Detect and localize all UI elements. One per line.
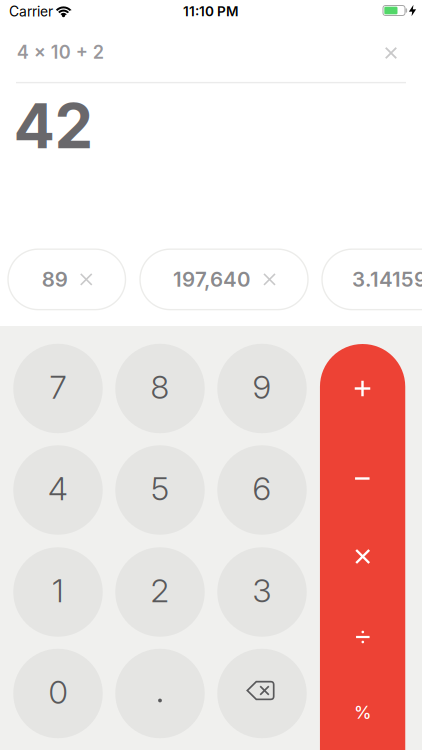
staticText: 1	[52, 571, 64, 610]
button[interactable]: 4	[13, 445, 103, 535]
button[interactable]: Subtract	[341, 463, 384, 494]
staticText: 197,640	[173, 267, 251, 292]
button[interactable]: 6	[217, 445, 307, 535]
staticText: %	[354, 702, 371, 723]
button[interactable]: 3.14159265	[322, 249, 422, 310]
button[interactable]: Delete	[217, 649, 307, 738]
button[interactable]: Clear expression	[378, 40, 404, 66]
staticText: 9	[252, 368, 271, 406]
staticText: 4 × 10 + 2	[17, 41, 104, 63]
button[interactable]: 2	[115, 547, 205, 637]
button[interactable]: 197,640	[140, 249, 308, 310]
button[interactable]: 9	[217, 344, 307, 433]
button[interactable]: Decimal point	[115, 649, 205, 738]
staticText: Carrier	[9, 3, 53, 20]
button[interactable]: 0	[13, 649, 103, 738]
button[interactable]: 7	[13, 344, 103, 433]
staticText: 7	[49, 368, 66, 406]
staticText: 4	[48, 469, 68, 508]
button[interactable]: 5	[115, 445, 205, 535]
staticText: 8	[150, 368, 169, 406]
button[interactable]: Divide	[341, 615, 385, 659]
staticText: 11:10 PM	[183, 3, 239, 20]
button[interactable]: Multiply	[342, 536, 383, 577]
staticText: 3	[252, 571, 271, 610]
staticText: 2	[150, 571, 169, 610]
button[interactable]: 89	[8, 249, 125, 310]
button[interactable]: 1	[13, 547, 103, 637]
staticText: 3.14159265	[352, 267, 422, 292]
button[interactable]: 8	[115, 344, 205, 433]
staticText: 89	[42, 267, 68, 292]
button[interactable]: Add	[341, 367, 384, 410]
staticText: 42	[13, 89, 93, 163]
button[interactable]: 3	[217, 547, 307, 637]
button[interactable]: Percent	[344, 692, 381, 733]
staticText: 0	[48, 673, 67, 711]
staticText: 6	[252, 469, 271, 508]
staticText: 5	[151, 469, 169, 508]
